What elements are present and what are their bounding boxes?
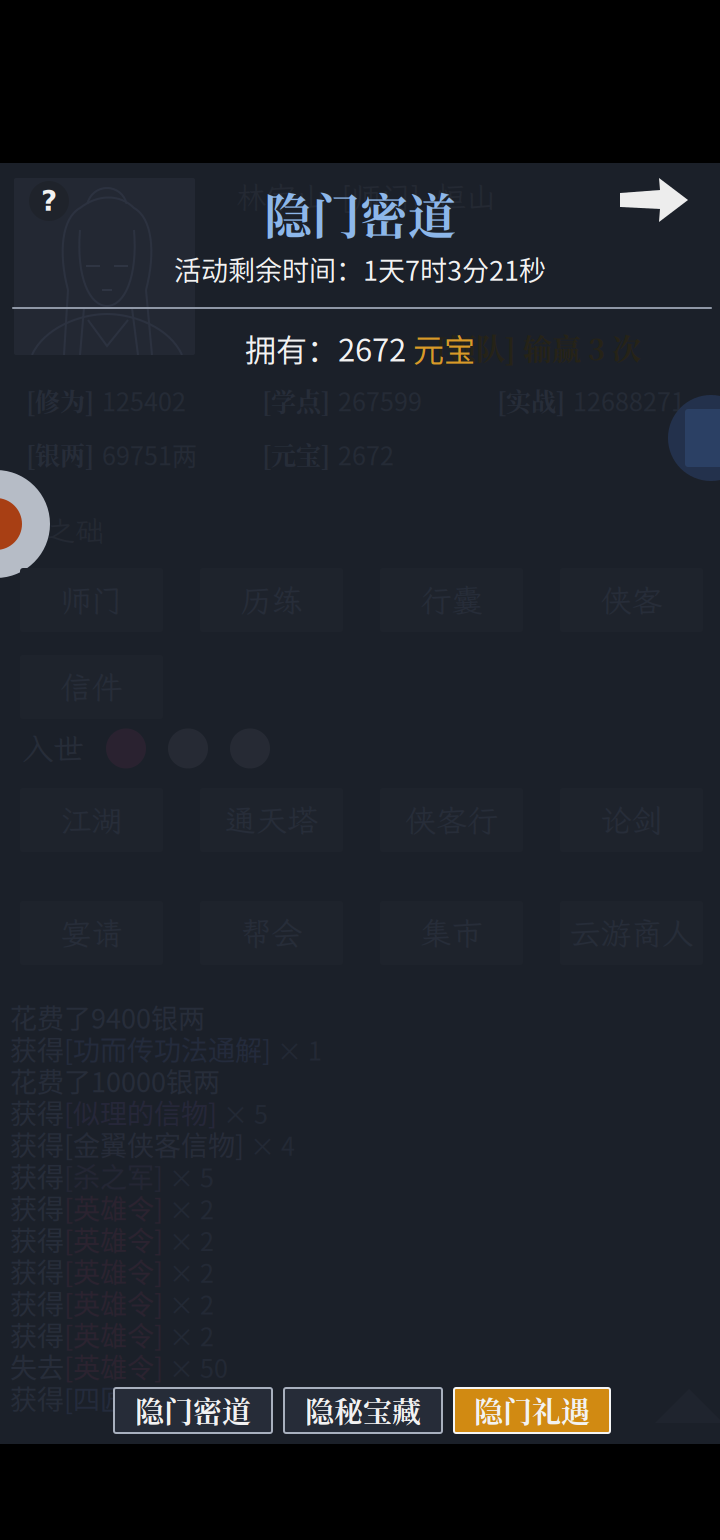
staticText: [师门]: [340, 177, 422, 216]
staticText: 历练: [240, 579, 302, 620]
button[interactable]: Unknown character: [29, 181, 69, 221]
staticText: ?: [41, 188, 57, 214]
staticText: [实战]: [497, 385, 565, 416]
staticText: 行囊: [420, 579, 482, 620]
button[interactable]: Continue: [620, 176, 688, 224]
staticText: × 2: [163, 1289, 214, 1318]
staticText: 2672: [338, 439, 394, 470]
staticText: 获得: [10, 1255, 64, 1287]
staticText: 267599: [338, 385, 422, 416]
staticText: 隐门礼遇: [474, 1390, 590, 1431]
staticText: [功而传功法通解]: [64, 1033, 271, 1064]
staticText: 获得: [10, 1287, 64, 1318]
button[interactable]: 隐门密道: [114, 1388, 272, 1433]
staticText: 侠客: [600, 579, 662, 620]
staticText: 获得: [10, 1128, 64, 1160]
staticText: 帮会: [240, 912, 302, 953]
staticText: 林宇山: [236, 177, 326, 216]
staticText: [杀之军]: [64, 1160, 163, 1191]
staticText: [修为]: [26, 385, 94, 416]
staticText: 之础: [46, 511, 104, 549]
staticText: × 2: [163, 1320, 214, 1350]
staticText: [银两]: [26, 439, 94, 470]
staticText: 花费了9400银两: [10, 1001, 205, 1033]
staticText: × 2: [163, 1193, 214, 1223]
staticText: 通天塔: [225, 799, 318, 840]
staticText: [似理的信物]: [64, 1096, 217, 1128]
staticText: 拥有：2672: [245, 330, 413, 366]
staticText: 隐门密道: [135, 1390, 251, 1431]
staticText: [领队] 输赢 3 次: [436, 327, 641, 369]
staticText: 125402: [102, 385, 186, 416]
staticText: 师门: [60, 579, 122, 620]
staticText: [英雄令]: [64, 1318, 163, 1350]
staticText: 集市: [420, 912, 482, 953]
staticText: 宴请: [60, 912, 122, 953]
staticText: 隐门密道: [264, 185, 456, 241]
staticText: × 50: [163, 1352, 228, 1382]
staticText: × 2: [163, 1225, 214, 1255]
staticText: [四匠: [64, 1382, 127, 1414]
staticText: [元宝]: [262, 439, 330, 470]
button[interactable]: 隐门礼遇: [454, 1388, 610, 1433]
staticText: 获得: [10, 1033, 64, 1064]
staticText: 12688271: [573, 385, 685, 416]
staticText: × 5: [217, 1098, 268, 1128]
staticText: 获得: [10, 1096, 64, 1128]
staticText: 获得: [10, 1382, 64, 1414]
staticText: 入世: [22, 728, 84, 769]
staticText: [学点]: [262, 385, 330, 416]
staticText: 获得: [10, 1191, 64, 1223]
staticText: 云游商人: [569, 912, 693, 953]
staticText: 恒山: [436, 177, 496, 216]
staticText: 侠客行: [405, 799, 498, 840]
button[interactable]: 云游商人: [560, 901, 703, 965]
staticText: [英雄令]: [64, 1350, 163, 1382]
staticText: [英雄令]: [64, 1223, 163, 1255]
staticText: 论剑: [600, 799, 662, 840]
button[interactable]: 隐秘宝藏: [284, 1388, 442, 1433]
staticText: 隐秘宝藏: [305, 1390, 421, 1431]
staticText: 获得: [10, 1160, 64, 1191]
staticText: [英雄令]: [64, 1287, 163, 1318]
staticText: 失去: [10, 1350, 64, 1382]
staticText: 信件: [60, 666, 122, 707]
staticText: 元宝: [413, 330, 475, 366]
staticText: 获得: [10, 1223, 64, 1255]
staticText: [金翼侠客信物]: [64, 1128, 244, 1160]
staticText: × 4: [244, 1130, 295, 1159]
staticText: 花费了10000银两: [10, 1064, 220, 1096]
staticText: × 5: [163, 1162, 214, 1191]
staticText: 活动剩余时间：1天7时3分21秒: [174, 253, 546, 285]
staticText: 江湖: [60, 799, 122, 840]
staticText: [英雄令]: [64, 1255, 163, 1287]
staticText: [英雄令]: [64, 1191, 163, 1223]
staticText: 69751两: [102, 439, 197, 470]
staticText: × 2: [163, 1257, 214, 1286]
staticText: 获得: [10, 1318, 64, 1350]
staticText: × 1: [271, 1035, 322, 1064]
